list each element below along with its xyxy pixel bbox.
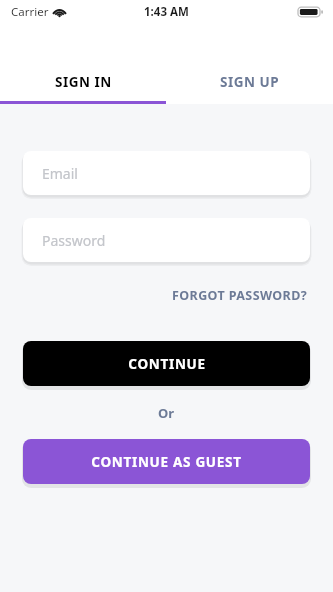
staticText: FORGOT PASSWORD? (172, 287, 308, 304)
button[interactable]: SIGN UP (166, 60, 333, 104)
staticText: 1:43 AM (144, 4, 189, 20)
staticText: SIGN IN (55, 73, 112, 91)
staticText: CONTINUE (128, 355, 206, 373)
button[interactable]: Email (23, 151, 310, 195)
staticText: CONTINUE AS GUEST (91, 453, 242, 471)
button[interactable]: SIGN IN (0, 60, 166, 104)
button[interactable]: Password (23, 218, 310, 262)
staticText: Email (42, 164, 78, 183)
button[interactable]: CONTINUE (23, 341, 310, 386)
button[interactable]: CONTINUE AS GUEST (23, 439, 310, 484)
staticText: Or (158, 404, 175, 422)
button[interactable]: FORGOT PASSWORD? (170, 283, 310, 308)
staticText: Carrier (11, 4, 49, 20)
staticText: SIGN UP (220, 73, 280, 91)
staticText: Password (42, 231, 106, 250)
